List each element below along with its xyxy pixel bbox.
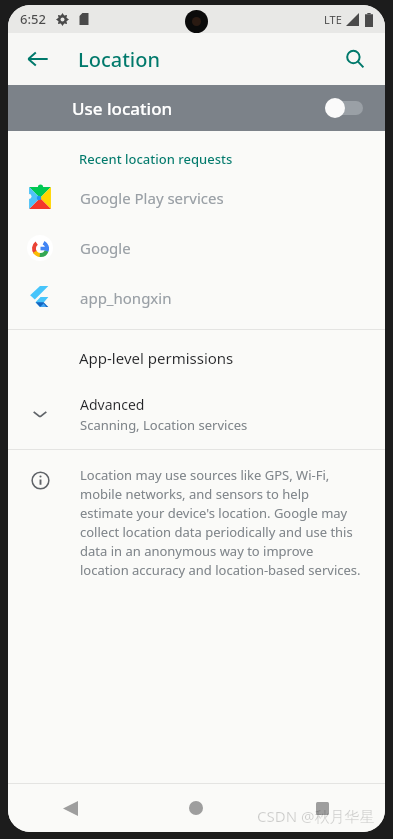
staticText: app_hongxin <box>80 288 172 308</box>
button[interactable]: Home <box>133 784 259 832</box>
staticText: Advanced <box>80 395 145 414</box>
staticText: LTE <box>324 12 342 27</box>
staticText: Google <box>80 238 131 258</box>
staticText: CSDN @秋月华星 <box>257 806 375 826</box>
button[interactable]: Back <box>16 37 60 81</box>
staticText: Google Play services <box>80 188 224 208</box>
staticText: Location may use sources like GPS, Wi-Fi… <box>80 466 361 579</box>
button[interactable]: Back <box>8 784 133 832</box>
button[interactable]: Search <box>333 37 377 81</box>
button[interactable]: App-level permissions <box>8 330 385 386</box>
button[interactable]: app_hongxin <box>8 273 385 323</box>
staticText: 6:52 <box>20 10 46 28</box>
button[interactable]: Advanced <box>8 386 385 442</box>
button[interactable]: Google Play services <box>8 173 385 223</box>
staticText: Scanning, Location services <box>80 416 248 434</box>
staticText: App-level permissions <box>79 348 234 368</box>
button[interactable]: Use location <box>8 85 385 131</box>
staticText: Use location <box>72 97 325 120</box>
staticText: Location <box>78 46 160 73</box>
button[interactable]: Google <box>8 223 385 273</box>
staticText: Recent location requests <box>79 150 233 168</box>
button[interactable]: Recent apps <box>259 784 385 832</box>
